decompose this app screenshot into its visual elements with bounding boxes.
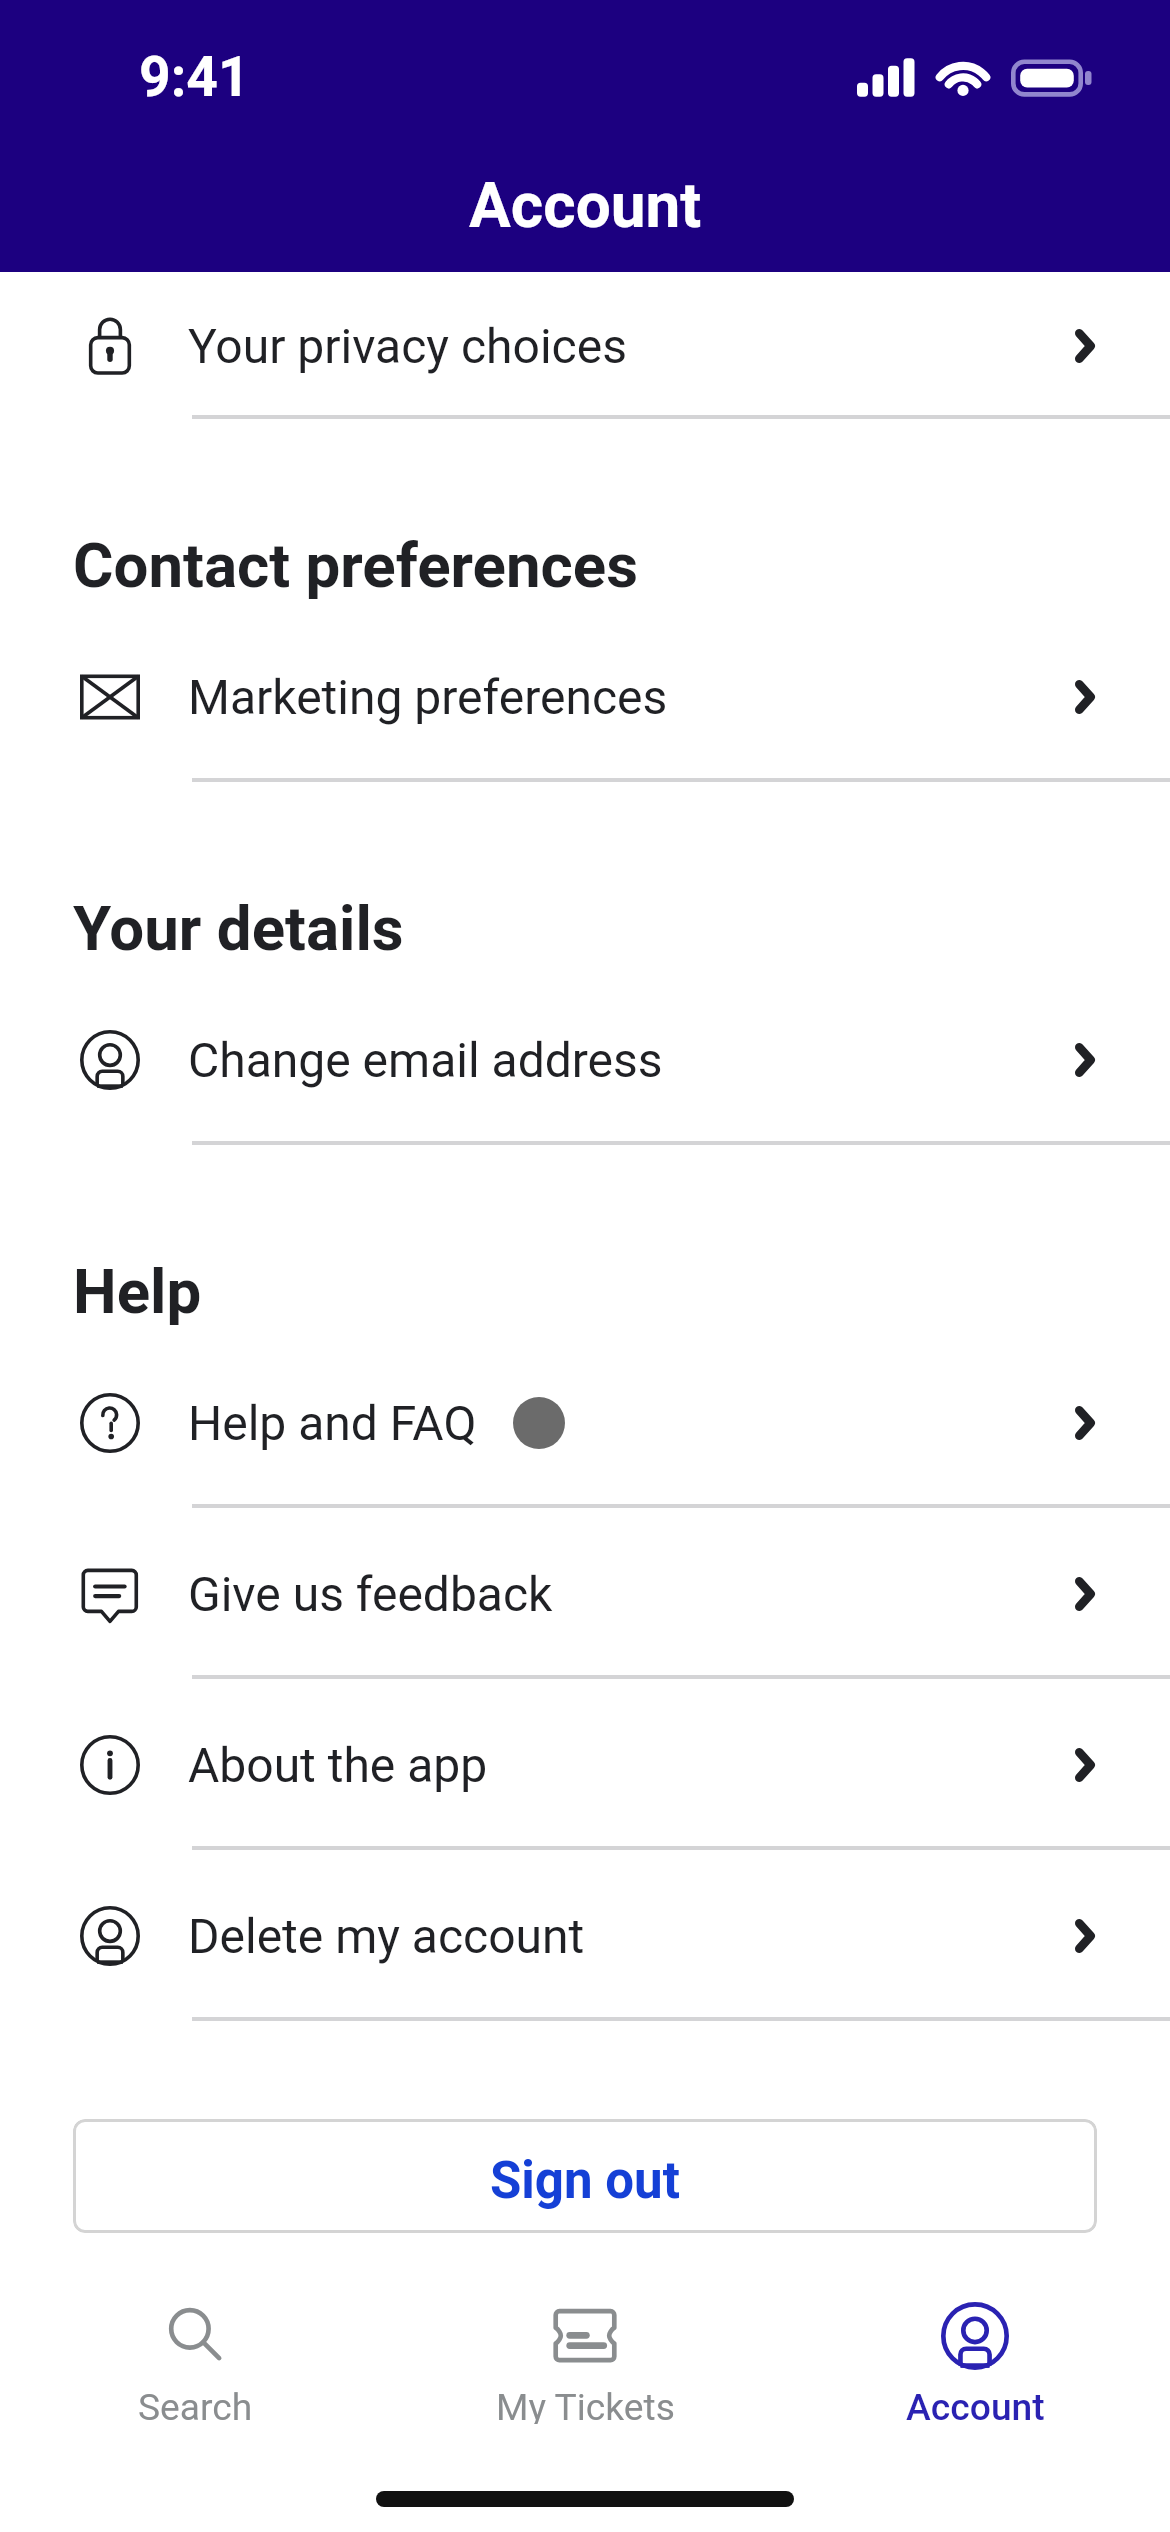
button[interactable]: Sign out (73, 2119, 1097, 2233)
button[interactable]: Help and FAQ (0, 1337, 1170, 1508)
staticText: Contact preferences (73, 530, 639, 602)
staticText: Your privacy choices (188, 318, 627, 374)
other: Search (161, 2302, 229, 2370)
staticText: Change email address (188, 1032, 663, 1088)
staticText: Sign out (490, 2151, 680, 2211)
staticText: Help (73, 1256, 202, 1328)
button[interactable]: Privacy (0, 272, 1170, 419)
staticText: Search (138, 2385, 253, 2424)
button[interactable]: My Tickets (390, 2234, 780, 2424)
staticText: Your details (73, 893, 404, 965)
other: Help and FAQ (80, 1393, 140, 1453)
staticText: My Tickets (496, 2385, 675, 2424)
other: Account details (80, 1906, 140, 1966)
other: Open (1075, 1043, 1095, 1077)
other: Open (1075, 1577, 1095, 1611)
other: Give us feedback (80, 1564, 140, 1624)
button[interactable]: Give us feedback (0, 1508, 1170, 1679)
other: Marketing preferences (80, 667, 140, 727)
staticText: 9:41 (139, 45, 250, 110)
staticText: Give us feedback (188, 1566, 553, 1622)
staticText: About the app (188, 1737, 488, 1793)
other: My Tickets (551, 2302, 619, 2370)
other: Privacy (80, 316, 140, 376)
button[interactable]: Search (0, 2234, 390, 2424)
other: Account (941, 2302, 1009, 2370)
other: Open (1075, 329, 1095, 363)
staticText: Marketing preferences (188, 669, 668, 725)
button[interactable]: Account details (0, 1850, 1170, 2021)
other: Account details (80, 1030, 140, 1090)
button[interactable]: About the app (0, 1679, 1170, 1850)
button[interactable]: Account (780, 2234, 1170, 2424)
staticText: Delete my account (188, 1908, 585, 1964)
button[interactable]: Account details (0, 974, 1170, 1145)
staticText: Account (469, 169, 702, 242)
other: Open (1075, 1748, 1095, 1782)
other: Open (1075, 1406, 1095, 1440)
other: About the app (80, 1735, 140, 1795)
button[interactable]: Marketing preferences (0, 611, 1170, 782)
other: Open (1075, 680, 1095, 714)
staticText: Help and FAQ (188, 1395, 477, 1451)
staticText: Account (906, 2385, 1045, 2424)
other: Open (1075, 1919, 1095, 1953)
